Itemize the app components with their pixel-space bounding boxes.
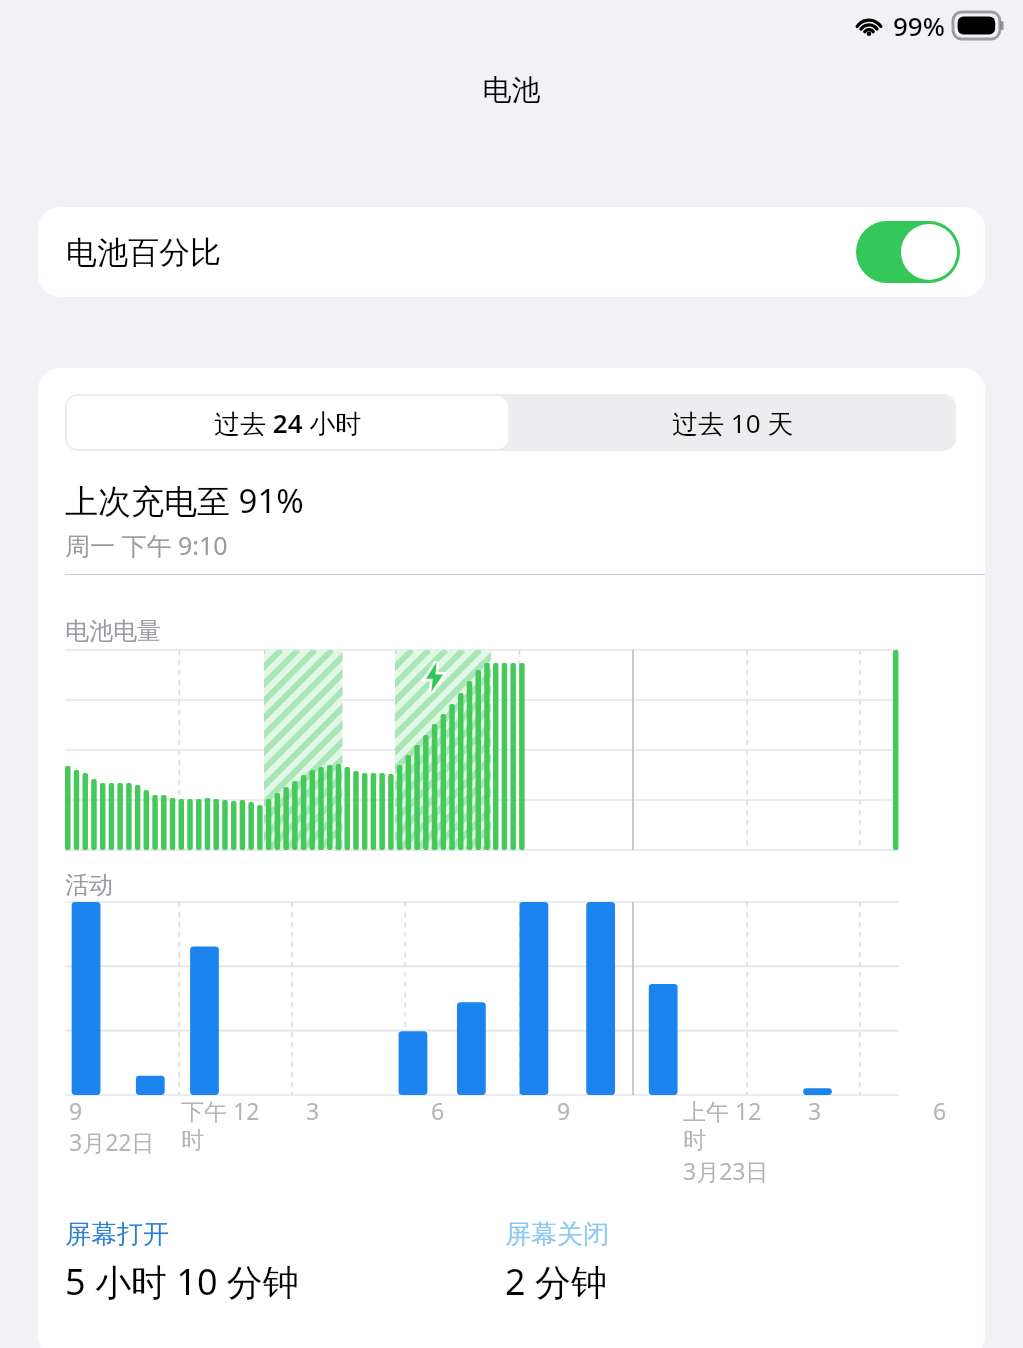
staticText: 周一 下午 9:10	[65, 528, 228, 562]
staticText: 活动	[65, 870, 113, 900]
button[interactable]: 电池百分比开关	[856, 221, 960, 283]
staticText: 屏幕打开	[65, 1218, 169, 1251]
staticText: 电池百分比	[66, 233, 221, 272]
staticText: 过去 10 天	[672, 405, 794, 441]
staticText: 上午 12 时	[683, 1095, 762, 1155]
staticText: 3	[306, 1095, 320, 1126]
staticText: 屏幕关闭	[505, 1218, 609, 1251]
staticText: 6	[933, 1095, 947, 1126]
staticText: 3月23日	[683, 1155, 769, 1186]
staticText: 上次充电至 91%	[65, 478, 304, 523]
staticText: 电池电量	[65, 616, 161, 646]
staticText: 电池	[0, 72, 1023, 109]
staticText: 5 小时 10 分钟	[65, 1257, 299, 1306]
button[interactable]: 过去 10 天	[510, 394, 956, 451]
staticText: 3月22日	[69, 1126, 155, 1157]
staticText: 下午 12 时	[181, 1095, 260, 1155]
button[interactable]: 过去 24 小时	[67, 396, 508, 449]
staticText: 9	[557, 1095, 571, 1126]
staticText: 9	[69, 1095, 83, 1126]
button[interactable]: 电池百分比	[38, 207, 985, 297]
staticText: 3	[808, 1095, 822, 1126]
staticText: 6	[431, 1095, 445, 1126]
staticText: 过去 24 小时	[214, 405, 362, 441]
staticText: 2 分钟	[505, 1257, 607, 1306]
staticText: 99%	[893, 8, 945, 43]
